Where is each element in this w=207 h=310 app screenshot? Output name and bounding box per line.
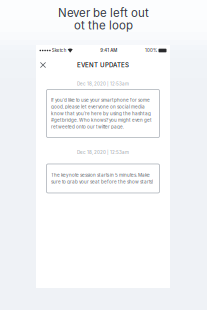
- staticText: EVENT UPDATES: [77, 61, 129, 69]
- staticText: The keynote session starts in 5 minutes.…: [51, 172, 153, 185]
- button[interactable]: Close: [36, 58, 50, 72]
- staticText: Never be left out: [58, 6, 149, 20]
- staticText: Dec 18, 2020 | 12:53am: [77, 149, 129, 155]
- staticText: If you'd like to use your smartphone for…: [51, 97, 152, 130]
- staticText: 100%: [145, 48, 157, 53]
- staticText: Sketch: [52, 48, 67, 53]
- staticText: Dec 18, 2020 | 12:53am: [77, 81, 129, 86]
- staticText: ot the loop: [74, 18, 133, 32]
- staticText: 9:41 AM: [100, 48, 117, 53]
